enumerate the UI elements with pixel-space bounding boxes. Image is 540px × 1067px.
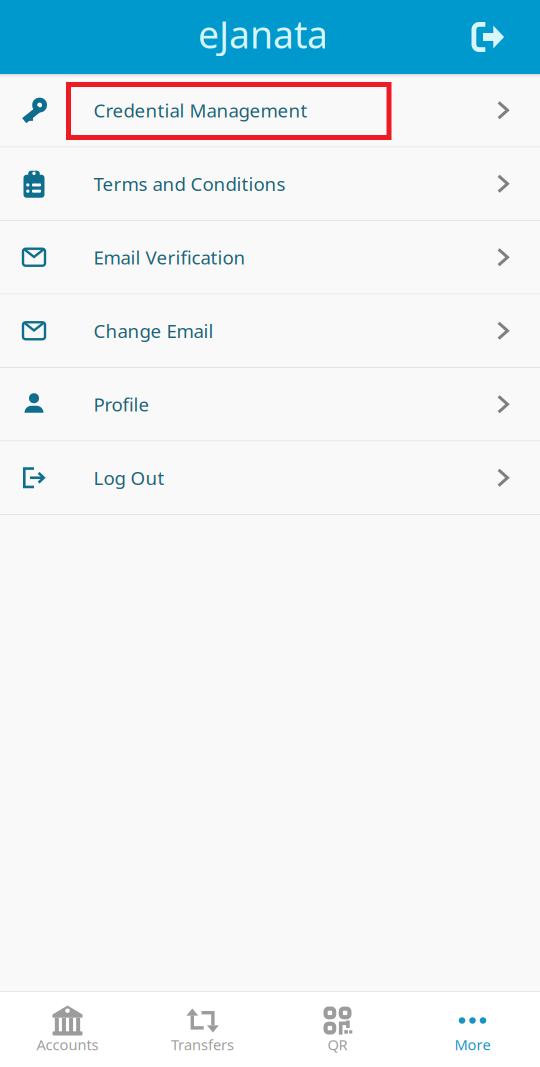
staticText: Email Verification <box>93 245 245 270</box>
staticText: Accounts <box>36 1035 98 1054</box>
button[interactable]: Accounts <box>0 992 135 1067</box>
staticText: Log Out <box>93 465 164 490</box>
button[interactable]: Credential Management <box>0 74 540 146</box>
button[interactable]: Email Verification <box>0 221 540 293</box>
button[interactable]: More <box>405 992 540 1067</box>
button[interactable]: Terms and Conditions <box>0 147 540 220</box>
button[interactable]: Transfers <box>135 992 270 1067</box>
staticText: Change Email <box>93 318 213 343</box>
button[interactable]: Log Out <box>0 441 540 514</box>
staticText: Transfers <box>171 1035 234 1054</box>
button[interactable]: Log out <box>458 7 518 67</box>
staticText: eJanata <box>198 9 328 59</box>
button[interactable]: Profile <box>0 368 540 440</box>
staticText: Credential Management <box>93 98 307 123</box>
staticText: More <box>454 1035 490 1054</box>
button[interactable]: QR <box>270 992 405 1067</box>
staticText: QR <box>327 1035 347 1054</box>
staticText: Terms and Conditions <box>93 171 285 196</box>
button[interactable]: Change Email <box>0 294 540 367</box>
staticText: Profile <box>93 392 149 417</box>
